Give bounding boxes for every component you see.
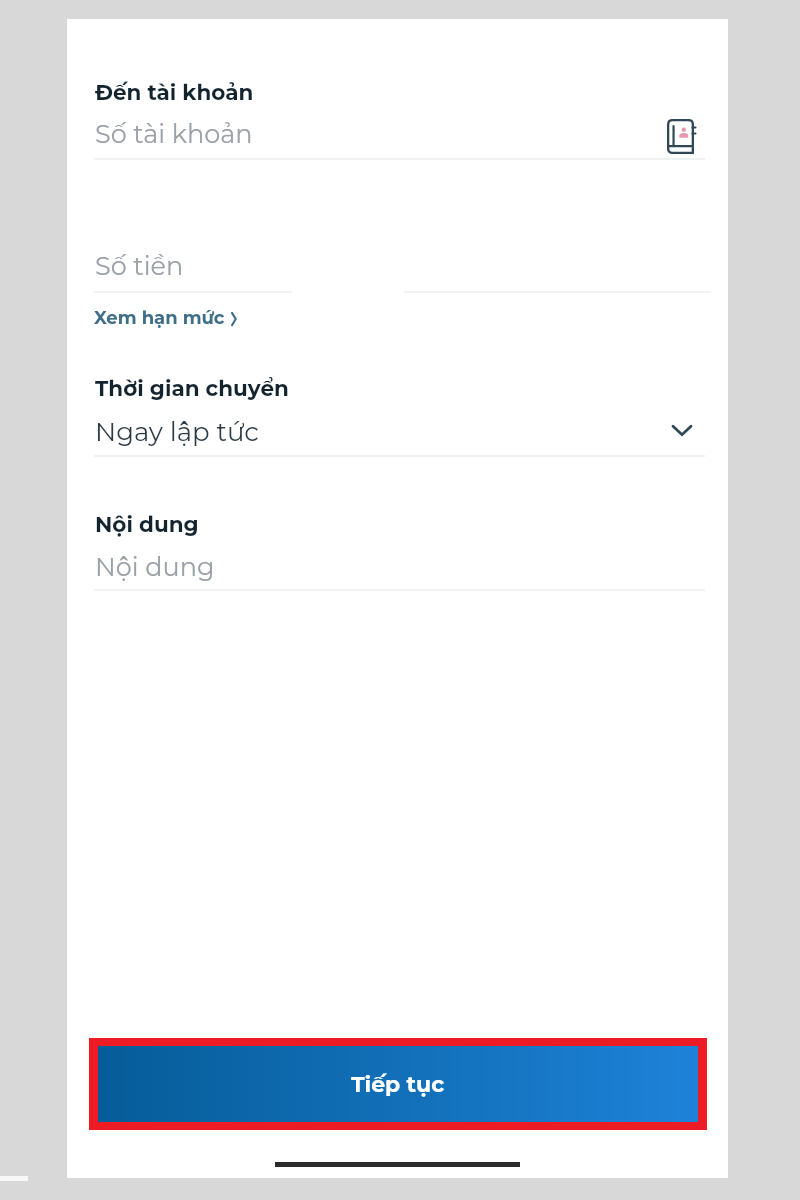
staticText: Đến tài khoản — [95, 79, 254, 105]
staticText: Thời gian chuyển — [95, 375, 289, 401]
button[interactable] — [94, 503, 705, 589]
staticText: Tiếp tục — [351, 1071, 445, 1098]
button[interactable] — [94, 239, 705, 293]
staticText: Xem hạn mức — [94, 307, 225, 329]
button[interactable]: Xem hạn mức — [94, 307, 236, 329]
staticText: Nội dung — [95, 551, 215, 582]
button[interactable]: Chọn từ danh bạ — [656, 110, 708, 162]
staticText: Nội dung — [95, 511, 199, 537]
staticText: Ngay lập tức — [95, 416, 259, 448]
button[interactable]: Mở danh sách thời gian chuyển — [656, 404, 708, 456]
button[interactable] — [94, 367, 639, 455]
button[interactable]: Tiếp tục — [98, 1046, 698, 1122]
staticText: Số tài khoản — [95, 118, 253, 149]
button[interactable] — [94, 71, 639, 161]
staticText: Số tiền — [95, 250, 184, 281]
